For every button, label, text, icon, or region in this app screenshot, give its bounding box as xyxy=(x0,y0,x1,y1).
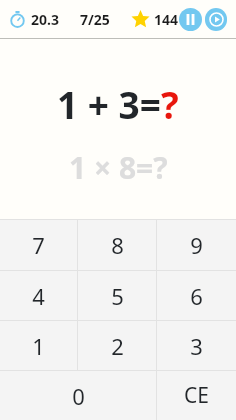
staticText: 1 × 8=? xyxy=(69,147,168,188)
staticText: CE xyxy=(184,381,209,410)
button[interactable]: 3 xyxy=(157,321,236,370)
staticText: 9 xyxy=(190,230,203,260)
button[interactable]: 7 xyxy=(0,220,77,270)
staticText: 2 xyxy=(111,331,124,361)
button[interactable]: 9 xyxy=(157,220,236,270)
button[interactable]: 6 xyxy=(157,271,236,320)
button[interactable]: Play xyxy=(205,8,227,31)
staticText: 144 xyxy=(154,10,179,29)
staticText: 8 xyxy=(111,230,124,260)
staticText: 1 + 3= xyxy=(57,79,161,129)
staticText: 7 xyxy=(32,230,45,260)
staticText: 6 xyxy=(190,281,203,311)
button[interactable]: CE xyxy=(157,371,236,420)
button[interactable]: 2 xyxy=(78,321,156,370)
staticText: 7/25 xyxy=(80,10,110,29)
staticText: 4 xyxy=(32,281,45,311)
staticText: 20.3 xyxy=(31,10,59,29)
staticText: ? xyxy=(161,79,179,129)
button[interactable]: 4 xyxy=(0,271,77,320)
button[interactable]: Pause xyxy=(179,8,202,31)
staticText: 0 xyxy=(72,381,85,411)
button[interactable]: 0 xyxy=(0,371,156,420)
staticText: 5 xyxy=(111,281,124,311)
staticText: 1 xyxy=(32,331,45,361)
button[interactable]: 5 xyxy=(78,271,156,320)
button[interactable]: 1 xyxy=(0,321,77,370)
staticText: 3 xyxy=(190,331,203,361)
button[interactable]: 8 xyxy=(78,220,156,270)
